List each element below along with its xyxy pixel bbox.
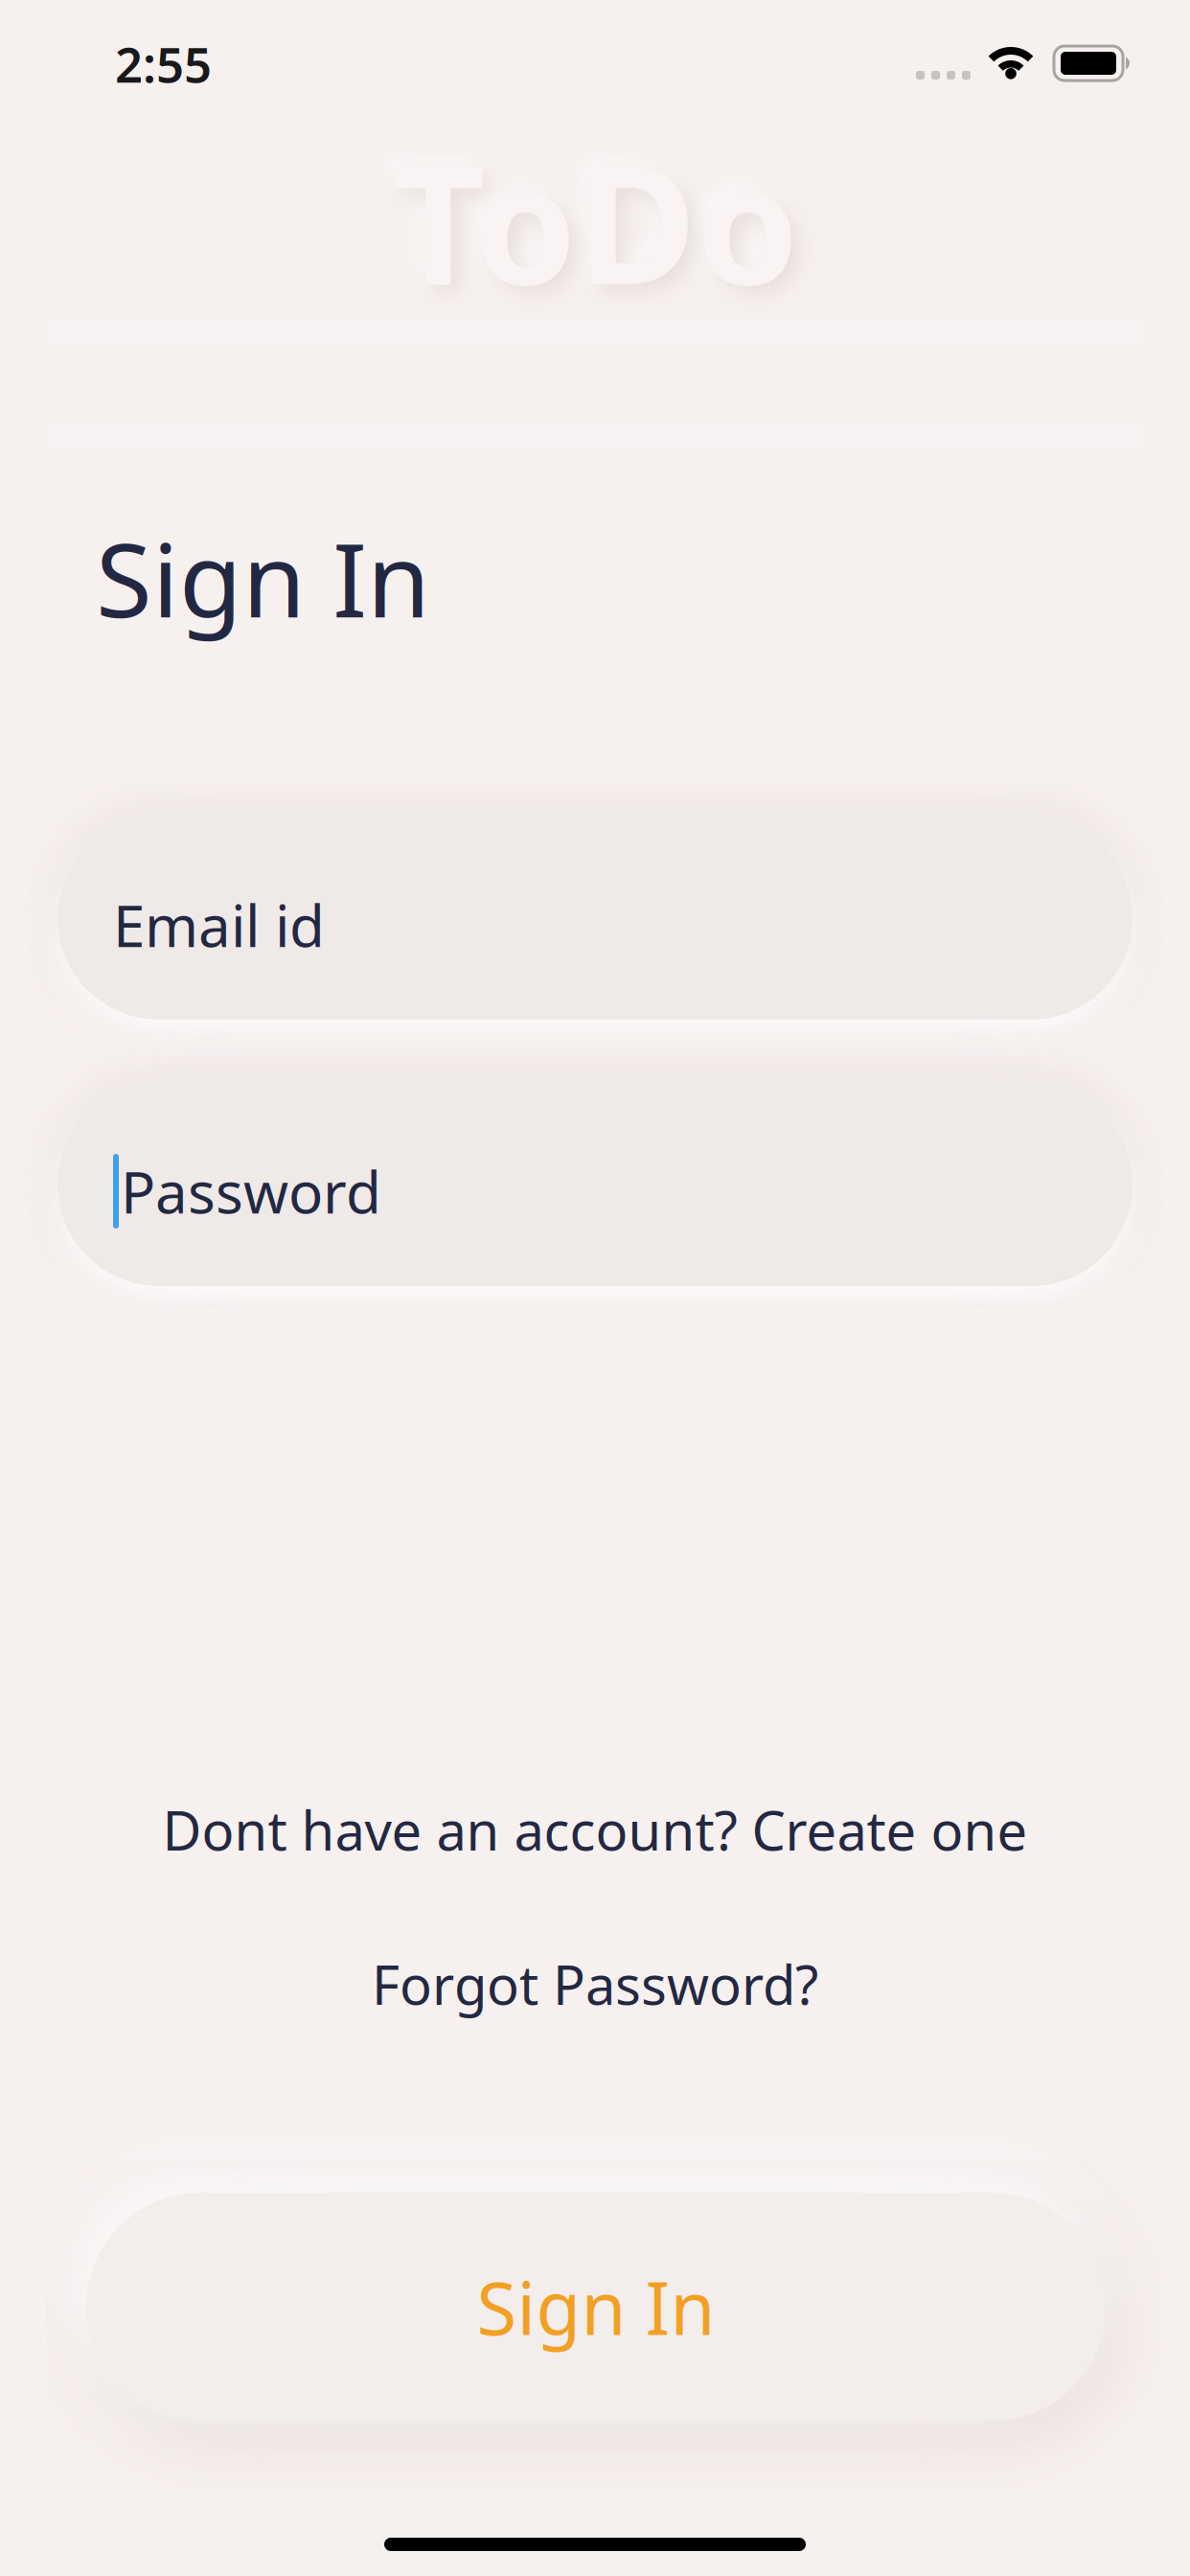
staticText: ToDo xyxy=(391,112,799,329)
button[interactable]: Sign In xyxy=(86,2193,1106,2421)
staticText: Forgot Password? xyxy=(372,1948,818,2020)
staticText: Sign In xyxy=(477,2258,715,2355)
staticText: Sign In xyxy=(96,510,430,646)
staticText: Dont have an account? Create one xyxy=(162,1794,1028,1865)
button[interactable]: Email id xyxy=(57,816,1133,1020)
staticText: 2:55 xyxy=(115,32,212,96)
button[interactable]: Forgot Password? xyxy=(0,1948,1190,2020)
button[interactable]: Password xyxy=(57,1083,1133,1286)
staticText: Email id xyxy=(113,887,325,963)
staticText: Password xyxy=(121,1153,381,1229)
button[interactable]: Dont have an account? Create one xyxy=(0,1794,1190,1865)
